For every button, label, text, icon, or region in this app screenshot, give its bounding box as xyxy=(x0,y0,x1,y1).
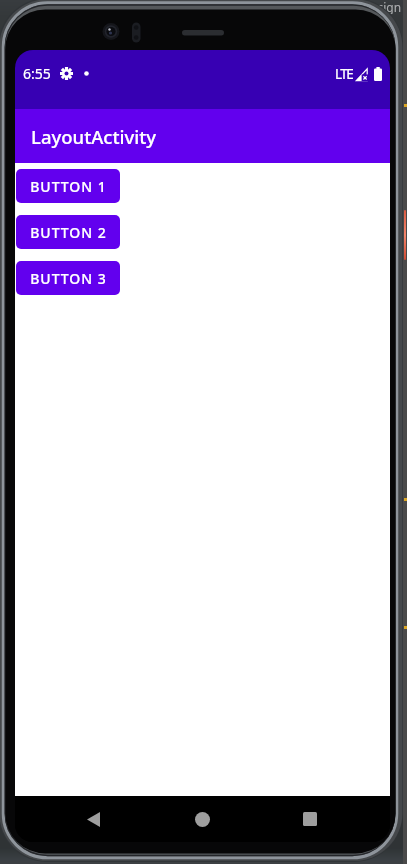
staticText: BUTTON 3 xyxy=(30,269,107,288)
button[interactable]: Recent apps xyxy=(288,797,332,841)
button[interactable]: BUTTON 3 xyxy=(16,261,120,295)
button[interactable]: Back xyxy=(71,797,115,841)
staticText: LTE xyxy=(335,65,353,83)
staticText: LayoutActivity xyxy=(31,124,157,149)
button[interactable]: BUTTON 2 xyxy=(16,215,120,249)
staticText: BUTTON 2 xyxy=(30,223,107,242)
button[interactable]: BUTTON 1 xyxy=(16,169,120,203)
staticText: BUTTON 1 xyxy=(30,177,107,196)
button[interactable]: Home xyxy=(180,797,224,841)
staticText: 6:55 xyxy=(23,64,51,83)
staticText: Design xyxy=(362,0,402,14)
